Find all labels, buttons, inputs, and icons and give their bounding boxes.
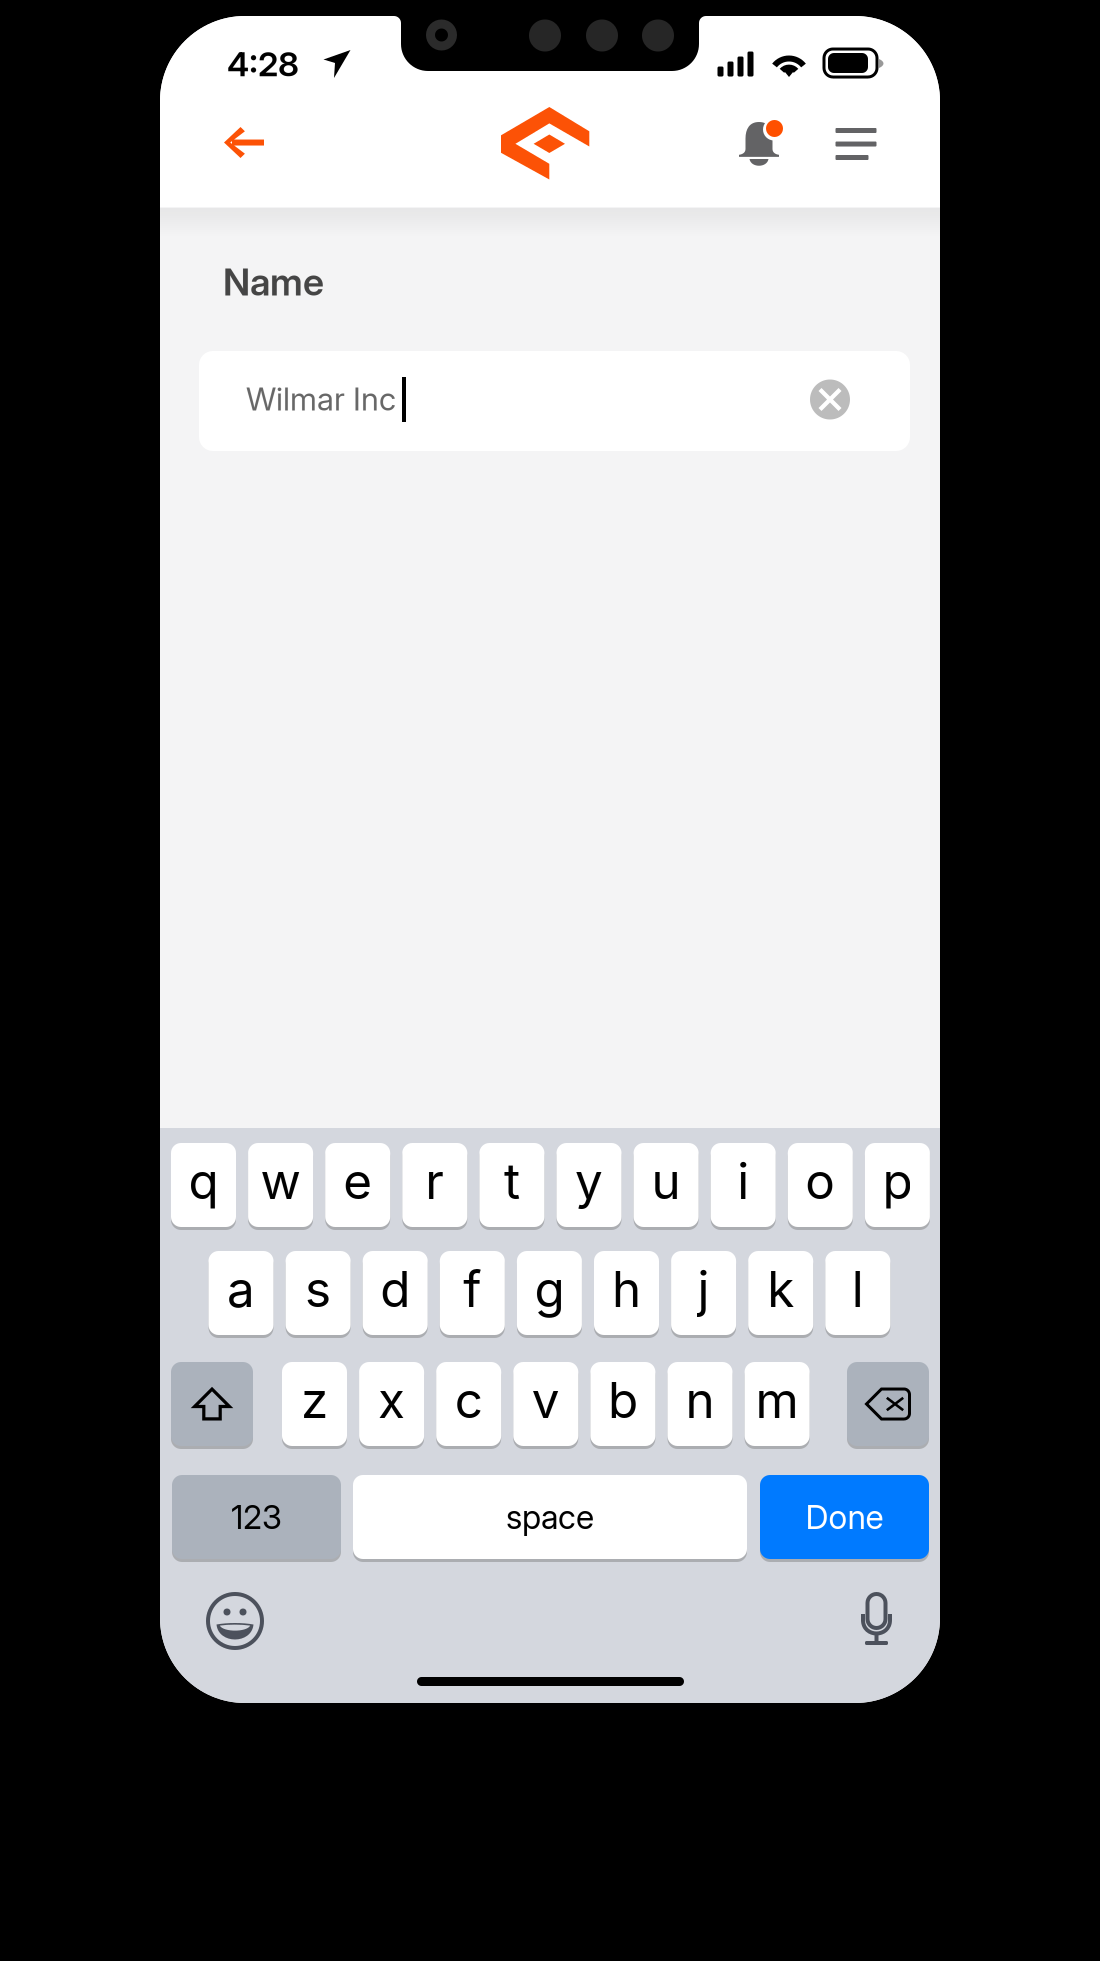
- staticText: c: [455, 1370, 483, 1430]
- button[interactable]: h: [594, 1251, 659, 1338]
- button[interactable]: g: [517, 1251, 582, 1338]
- staticText: g: [534, 1259, 564, 1319]
- button[interactable]: k: [748, 1251, 813, 1338]
- button[interactable]: c: [436, 1362, 501, 1449]
- staticText: u: [652, 1151, 681, 1211]
- button[interactable]: n: [667, 1362, 732, 1449]
- button[interactable]: Emoji: [208, 1594, 262, 1648]
- staticText: 123: [231, 1497, 282, 1537]
- button[interactable]: Delete: [847, 1362, 929, 1449]
- button[interactable]: p: [865, 1143, 930, 1230]
- staticText: j: [698, 1259, 710, 1319]
- staticText: l: [852, 1259, 864, 1319]
- button[interactable]: v: [513, 1362, 578, 1449]
- button[interactable]: i: [711, 1143, 776, 1230]
- staticText: m: [756, 1370, 799, 1430]
- button[interactable]: t: [479, 1143, 544, 1230]
- button[interactable]: e: [325, 1143, 390, 1230]
- button[interactable]: q: [171, 1143, 236, 1230]
- button[interactable]: m: [745, 1362, 810, 1449]
- staticText: i: [737, 1151, 749, 1211]
- button[interactable]: space: [353, 1475, 747, 1562]
- button[interactable]: b: [590, 1362, 655, 1449]
- button[interactable]: Clear text: [810, 379, 850, 420]
- staticText: b: [608, 1370, 638, 1430]
- button[interactable]: x: [359, 1362, 424, 1449]
- button[interactable]: Shift: [171, 1362, 253, 1449]
- button[interactable]: l: [825, 1251, 890, 1338]
- staticText: n: [685, 1370, 714, 1430]
- staticText: e: [343, 1151, 372, 1211]
- button[interactable]: z: [282, 1362, 347, 1449]
- button[interactable]: Menu: [811, 97, 901, 187]
- staticText: v: [532, 1370, 560, 1430]
- button[interactable]: o: [788, 1143, 853, 1230]
- button[interactable]: j: [671, 1251, 736, 1338]
- staticText: f: [463, 1259, 481, 1319]
- button[interactable]: w: [248, 1143, 313, 1230]
- button[interactable]: Done: [760, 1475, 929, 1562]
- button[interactable]: f: [440, 1251, 505, 1338]
- button[interactable]: 123: [172, 1475, 341, 1562]
- staticText: x: [378, 1370, 405, 1430]
- button[interactable]: u: [634, 1143, 699, 1230]
- staticText: y: [575, 1151, 603, 1211]
- staticText: p: [882, 1151, 912, 1211]
- staticText: Wilmar Inc: [246, 380, 396, 418]
- button[interactable]: s: [286, 1251, 351, 1338]
- staticText: 4:28: [227, 43, 299, 84]
- button[interactable]: Wilmar Inc: [199, 351, 910, 451]
- staticText: q: [188, 1151, 218, 1211]
- staticText: r: [425, 1151, 444, 1211]
- button[interactable]: r: [402, 1143, 467, 1230]
- button[interactable]: Dictation: [861, 1594, 892, 1645]
- staticText: space: [506, 1497, 594, 1537]
- staticText: Done: [805, 1497, 883, 1537]
- button[interactable]: a: [208, 1251, 273, 1338]
- staticText: s: [305, 1259, 331, 1319]
- staticText: o: [805, 1151, 835, 1211]
- button[interactable]: Notifications: [714, 97, 804, 187]
- staticText: w: [261, 1151, 301, 1211]
- button[interactable]: d: [363, 1251, 428, 1338]
- staticText: h: [612, 1259, 641, 1319]
- staticText: Name: [223, 259, 324, 305]
- staticText: k: [767, 1259, 794, 1319]
- staticText: z: [301, 1370, 328, 1430]
- button[interactable]: Back: [199, 97, 289, 187]
- staticText: d: [380, 1259, 410, 1319]
- staticText: t: [504, 1151, 520, 1211]
- staticText: a: [227, 1259, 255, 1319]
- button[interactable]: y: [556, 1143, 621, 1230]
